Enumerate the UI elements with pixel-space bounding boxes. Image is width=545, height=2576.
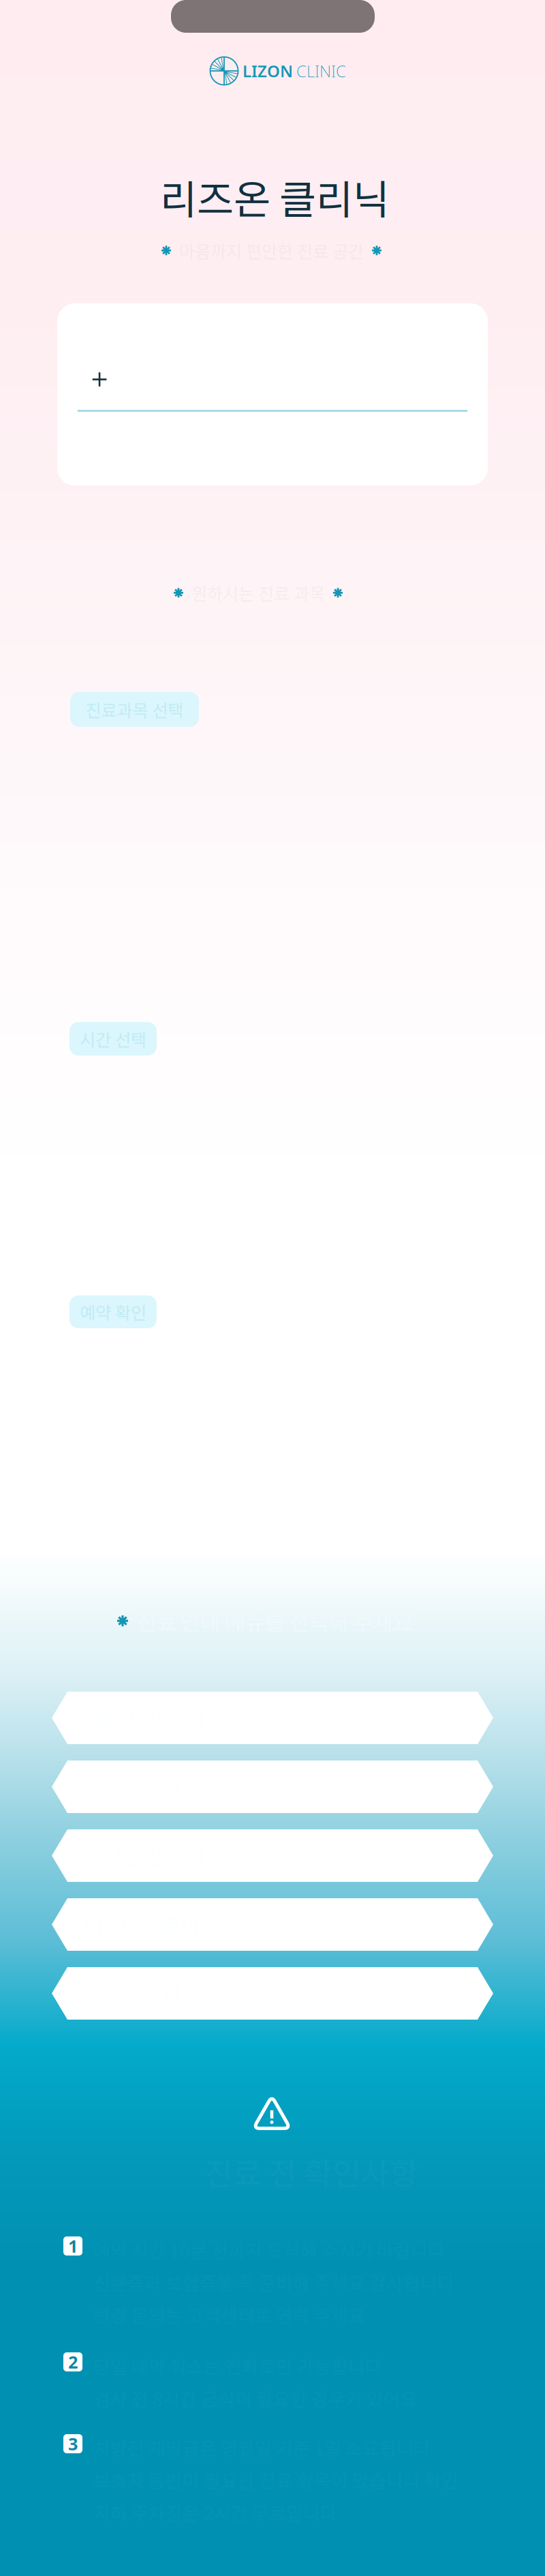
staticText: 1 (68, 2235, 78, 2257)
staticText: 예약 확인 (80, 1299, 146, 1324)
staticText: 2 (68, 2350, 78, 2373)
staticText: LIZON (243, 60, 293, 82)
staticText: 시간 선택 (80, 1026, 146, 1051)
button[interactable]: 시간 선택 (69, 1022, 157, 1055)
button[interactable]: 오시는 길 안내 (52, 1829, 493, 1882)
staticText: 3 (68, 2432, 78, 2455)
button[interactable]: 의료진 소개 (52, 1761, 493, 1813)
button[interactable]: 온라인 상담 예약 (52, 1967, 493, 2020)
button[interactable]: 예약 확인 (69, 1296, 157, 1328)
staticText: 리즈온 클리닉 (160, 168, 390, 226)
button[interactable]: ＋ (57, 303, 488, 485)
button[interactable]: 진료 시간 안내 (52, 1692, 493, 1744)
staticText: ＋ (86, 361, 113, 395)
button[interactable]: 비급여 진료비 (52, 1898, 493, 1951)
staticText: CLINIC (296, 60, 346, 82)
staticText: 진료과목 선택 (85, 697, 184, 722)
button[interactable]: 진료과목 선택 (70, 692, 199, 727)
